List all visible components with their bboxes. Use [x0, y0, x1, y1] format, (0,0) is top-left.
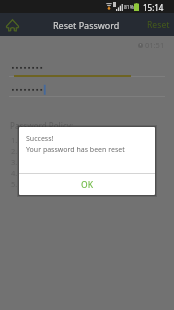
staticText: 81% — [124, 4, 134, 11]
staticText: 15:14 — [143, 2, 164, 13]
staticText: Password Policy: — [10, 120, 74, 131]
staticText: OK — [81, 179, 94, 191]
staticText: 4. Must contain lower case letter. — [11, 168, 126, 178]
button[interactable]: Home — [0, 13, 25, 36]
staticText: Success! — [26, 134, 54, 144]
staticText: 3. Must contain upper case letter. — [11, 157, 128, 167]
staticText: Reset Password — [53, 19, 120, 31]
staticText: 01:51 — [145, 40, 165, 50]
staticText: 2. Must contain one number. — [11, 146, 112, 156]
button[interactable]: Reset — [141, 13, 174, 36]
staticText: Your password has been reset — [26, 145, 125, 155]
staticText: 1. Minimum 8 characters long. — [11, 135, 118, 145]
staticText: Reset — [147, 19, 170, 31]
staticText: 5. Must contain a special character. — [11, 179, 134, 189]
button[interactable]: OK — [19, 174, 155, 195]
